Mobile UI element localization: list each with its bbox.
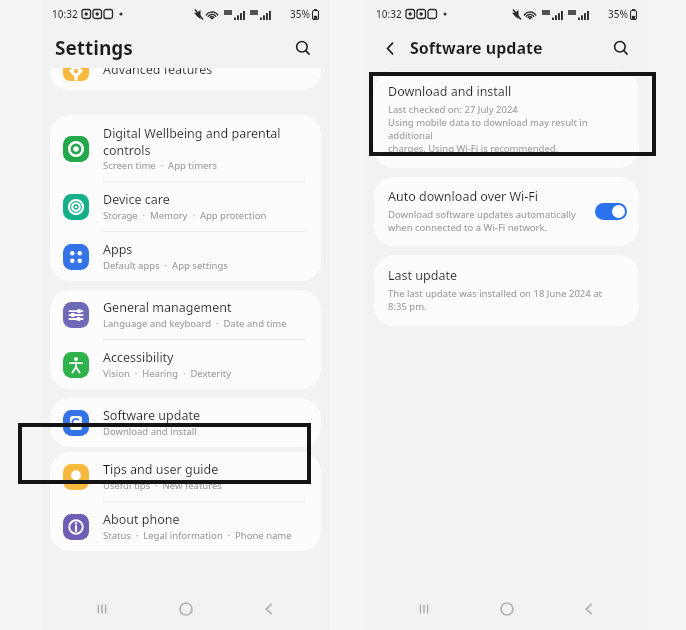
staticText: Vision · Hearing · Dexterity: [103, 367, 232, 380]
staticText: 10:32: [52, 7, 78, 21]
button[interactable]: Auto download over Wi-Fi toggle: [595, 203, 627, 220]
staticText: General management: [103, 299, 232, 316]
staticText: About phone: [103, 511, 180, 528]
button[interactable]: Software update: [50, 398, 321, 447]
button[interactable]: Advanced features: [50, 68, 321, 90]
staticText: 35%: [290, 7, 310, 21]
button[interactable]: Download and install: [374, 71, 639, 168]
staticText: Last checked on: 27 July 2024: [388, 103, 518, 116]
staticText: Default apps · App settings: [103, 259, 228, 272]
button[interactable]: Search: [286, 31, 320, 65]
staticText: Digital Wellbeing and parental controls: [103, 125, 281, 158]
button[interactable]: Back: [375, 33, 405, 63]
staticText: Screen time · App timers: [103, 159, 217, 172]
staticText: 10:32: [376, 7, 402, 21]
staticText: Device care: [103, 191, 170, 208]
staticText: Accessibility: [103, 349, 174, 366]
staticText: Status · Legal information · Phone name: [103, 529, 292, 542]
button[interactable]: Accessibility: [50, 340, 321, 389]
staticText: Download software updates automatically …: [388, 208, 576, 234]
button[interactable]: Device care: [50, 182, 321, 232]
staticText: Download and install: [103, 425, 197, 438]
staticText: Advanced features: [103, 68, 213, 78]
staticText: Useful tips · New features: [103, 479, 222, 492]
button[interactable]: Digital Wellbeing and parental controls: [50, 115, 321, 182]
button[interactable]: Back: [246, 588, 292, 630]
button[interactable]: Auto download over Wi-Fi: [374, 177, 639, 246]
staticText: Tips and user guide: [103, 461, 219, 478]
staticText: Download and install: [388, 83, 512, 100]
staticText: Using mobile data to download may result…: [388, 116, 625, 155]
staticText: Language and keyboard · Date and time: [103, 317, 287, 330]
button[interactable]: Tips and user guide: [50, 452, 321, 502]
button[interactable]: Apps: [50, 232, 321, 281]
button[interactable]: About phone: [50, 502, 321, 551]
button[interactable]: Last update: [374, 255, 639, 326]
staticText: Software update: [410, 37, 543, 59]
staticText: Storage · Memory · App protection: [103, 209, 267, 222]
button[interactable]: General management: [50, 290, 321, 340]
button[interactable]: Back: [566, 588, 612, 630]
staticText: Settings: [55, 35, 133, 61]
button[interactable]: Home: [163, 588, 209, 630]
button[interactable]: Recents: [401, 588, 447, 630]
button[interactable]: Home: [484, 588, 530, 630]
button[interactable]: Search: [604, 31, 638, 65]
staticText: Apps: [103, 241, 133, 258]
staticText: The last update was installed on 18 June…: [388, 287, 602, 313]
staticText: Last update: [388, 267, 457, 284]
staticText: Software update: [103, 407, 200, 424]
staticText: 35%: [608, 7, 628, 21]
button[interactable]: Recents: [79, 588, 125, 630]
staticText: Auto download over Wi-Fi: [388, 188, 539, 205]
